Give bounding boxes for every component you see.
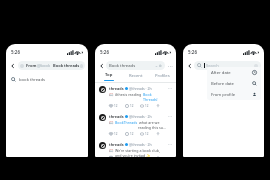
staticText: 12 xyxy=(130,104,134,108)
staticText: 📖 xyxy=(109,148,115,153)
staticText: what are we reading this summer?? xyxy=(138,120,167,130)
staticText: @threads · 2h xyxy=(129,142,152,147)
staticText: 12 xyxy=(145,132,149,136)
button[interactable]: More options xyxy=(167,142,172,147)
staticText: Profiles xyxy=(155,73,170,79)
staticText: Recent xyxy=(129,73,143,79)
staticText: After date xyxy=(211,70,231,76)
staticText: Book xyxy=(53,63,64,68)
staticText: 📖 xyxy=(109,120,115,125)
staticText: ⋯ xyxy=(168,142,172,147)
staticText: 5:26 xyxy=(11,49,20,55)
button[interactable]: Clear xyxy=(80,64,83,68)
staticText: We're starting a book club, and you're i… xyxy=(115,148,167,157)
staticText: @threads · 2h xyxy=(129,86,152,91)
staticText: From profile xyxy=(211,92,236,98)
staticText: threads xyxy=(109,142,124,147)
button[interactable]: book threads xyxy=(11,75,83,84)
button[interactable]: After date xyxy=(211,67,257,78)
staticText: 12 xyxy=(114,104,118,108)
button[interactable]: Repost xyxy=(140,104,149,108)
staticText: Book threads xyxy=(109,63,136,69)
staticText: 5:26 xyxy=(100,49,109,55)
button[interactable]: More xyxy=(167,63,173,69)
button[interactable]: Back xyxy=(9,62,16,69)
staticText: book threads xyxy=(19,77,46,83)
button[interactable]: Like xyxy=(109,104,118,108)
staticText: From xyxy=(26,63,37,68)
staticText: #thesis reading xyxy=(115,92,143,97)
button[interactable]: More options xyxy=(167,86,172,91)
staticText: threads xyxy=(109,114,124,119)
staticText: BookThreads xyxy=(115,120,138,125)
button[interactable]: Profiles xyxy=(149,71,176,82)
button[interactable]: Back xyxy=(186,62,193,69)
button[interactable]: Search xyxy=(197,61,258,70)
staticText: 12 xyxy=(114,132,118,136)
button[interactable]: Share xyxy=(156,132,161,136)
staticText: Before date xyxy=(211,81,234,87)
button[interactable]: From xyxy=(20,61,83,70)
button[interactable]: More options xyxy=(167,114,172,119)
button[interactable]: Reply xyxy=(125,104,134,108)
staticText: @threads · 2h xyxy=(129,114,152,119)
button[interactable]: Like xyxy=(109,132,118,136)
button[interactable]: Reply xyxy=(125,132,134,136)
staticText: @book xyxy=(37,63,51,68)
staticText: 📖 xyxy=(109,92,115,97)
staticText: threads xyxy=(109,86,124,91)
button[interactable]: Recent xyxy=(122,71,149,82)
button[interactable]: From profile xyxy=(211,89,257,100)
button[interactable]: Before date xyxy=(211,78,257,89)
button[interactable]: threads xyxy=(95,111,176,139)
staticText: ⋯ xyxy=(168,63,173,69)
staticText: ⌄ ⊗ xyxy=(155,63,162,68)
button[interactable]: threads xyxy=(95,83,176,111)
staticText: Top xyxy=(105,72,113,78)
staticText: Book Threads! xyxy=(143,92,167,102)
staticText: Search xyxy=(206,63,219,68)
button[interactable]: Repost xyxy=(140,132,149,136)
button[interactable]: Share xyxy=(156,104,161,108)
staticText: 12 xyxy=(130,132,134,136)
button[interactable]: Clear xyxy=(254,64,258,68)
staticText: ⋯ xyxy=(168,86,172,91)
button[interactable]: Back xyxy=(98,62,105,69)
staticText: 5:26 xyxy=(188,49,197,55)
staticText: 12 xyxy=(145,104,149,108)
button[interactable]: threads xyxy=(95,139,176,157)
button[interactable]: Top xyxy=(95,71,122,82)
button[interactable]: Book threads xyxy=(109,61,162,70)
staticText: threads xyxy=(64,63,80,68)
staticText: ⋯ xyxy=(168,114,172,119)
